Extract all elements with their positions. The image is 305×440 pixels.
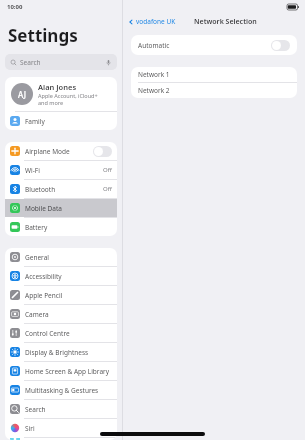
button[interactable]: Siri (5, 419, 117, 437)
button[interactable]: Toggle (271, 40, 290, 51)
staticText: Mobile Data (25, 204, 62, 213)
button[interactable]: Control Centre (5, 324, 117, 342)
button[interactable]: General (5, 248, 117, 266)
button[interactable]: Family (5, 112, 117, 130)
button[interactable]: Accessibility (5, 267, 117, 285)
staticText: Family (25, 117, 45, 126)
staticText: General (25, 253, 49, 262)
button[interactable]: Mobile Data (5, 199, 117, 217)
staticText: Bluetooth (25, 185, 56, 194)
staticText: Settings (8, 24, 78, 47)
staticText: Off (103, 166, 112, 174)
button[interactable]: Toggle (93, 146, 112, 157)
staticText: Display & Brightness (25, 348, 89, 357)
staticText: Network 1 (138, 70, 170, 79)
staticText: Search (25, 405, 46, 414)
staticText: Airplane Mode (25, 147, 70, 156)
staticText: Network Selection (194, 17, 257, 27)
staticText: Siri (25, 424, 35, 433)
staticText: Search (20, 58, 41, 67)
staticText: Network 2 (138, 86, 170, 95)
staticText: Multitasking & Gestures (25, 386, 99, 395)
button[interactable]: AJ (5, 77, 117, 111)
button[interactable]: Home Screen & App Library (5, 362, 117, 380)
button[interactable]: Display & Brightness (5, 343, 117, 361)
button[interactable]: Automatic (131, 35, 297, 55)
button[interactable]: Apple Pencil (5, 286, 117, 304)
button[interactable]: Multitasking & Gestures (5, 381, 117, 399)
button[interactable]: Search (5, 54, 117, 70)
button[interactable]: Wallpaper (5, 438, 117, 440)
staticText: Accessibility (25, 272, 62, 281)
button[interactable]: Network 2 (131, 83, 297, 98)
staticText: Alan Jones (38, 82, 77, 92)
button[interactable]: Camera (5, 305, 117, 323)
staticText: 10:00 (7, 3, 23, 11)
button[interactable]: vodafone UK (123, 13, 180, 30)
staticText: Apple Pencil (25, 291, 63, 300)
staticText: Control Centre (25, 329, 70, 338)
button[interactable]: Airplane Mode (5, 142, 117, 160)
staticText: Off (103, 185, 112, 193)
staticText: Camera (25, 310, 49, 319)
button[interactable]: Wi-Fi (5, 161, 117, 179)
staticText: vodafone UK (136, 17, 176, 26)
staticText: Automatic (138, 41, 170, 50)
staticText: Battery (25, 223, 48, 232)
staticText: and more (38, 99, 64, 106)
button[interactable]: Network 1 (131, 67, 297, 82)
button[interactable]: Bluetooth (5, 180, 117, 198)
staticText: Home Screen & App Library (25, 367, 110, 376)
staticText: Apple Account, iCloud+ (38, 92, 98, 99)
button[interactable]: Battery (5, 218, 117, 236)
staticText: AJ (18, 89, 26, 100)
staticText: Wi-Fi (25, 166, 40, 175)
button[interactable]: Search (5, 400, 117, 418)
